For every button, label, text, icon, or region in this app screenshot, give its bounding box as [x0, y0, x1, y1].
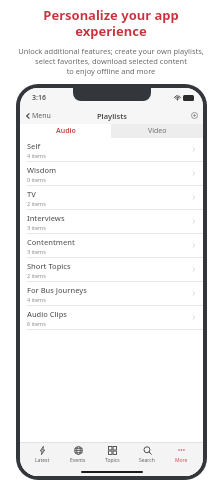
- button[interactable]: Self: [20, 138, 203, 162]
- staticText: Latest: [35, 457, 50, 464]
- staticText: For Bus Journeys: [27, 285, 87, 295]
- button[interactable]: Latest: [31, 445, 54, 465]
- staticText: 4 items: [27, 152, 46, 159]
- staticText: 0 items: [27, 176, 46, 183]
- staticText: 4 items: [27, 296, 46, 303]
- staticText: Short Topics: [27, 261, 71, 271]
- staticText: 6 items: [27, 320, 46, 327]
- button[interactable]: Menu: [20, 109, 57, 123]
- staticText: 2 items: [27, 200, 46, 207]
- button[interactable]: Interviews: [20, 210, 203, 234]
- staticText: Self: [27, 141, 41, 151]
- staticText: Contentment: [27, 237, 75, 247]
- button[interactable]: Video: [111, 124, 203, 138]
- staticText: Wisdom: [27, 165, 57, 175]
- button[interactable]: More: [171, 445, 192, 465]
- staticText: Unlock additional features; create your …: [6, 46, 216, 76]
- button[interactable]: Contentment: [20, 234, 203, 258]
- staticText: Events: [70, 457, 86, 464]
- staticText: Topics: [105, 457, 120, 464]
- button[interactable]: Audio Clips: [20, 306, 203, 330]
- staticText: 3 items: [27, 224, 46, 231]
- button[interactable]: Short Topics: [20, 258, 203, 282]
- button[interactable]: Wisdom: [20, 162, 203, 186]
- staticText: More: [175, 457, 188, 464]
- staticText: Video: [148, 126, 167, 136]
- staticText: Playlists: [97, 111, 127, 121]
- staticText: Search: [139, 457, 155, 464]
- button[interactable]: Events: [66, 445, 90, 465]
- button[interactable]: Add playlist: [186, 109, 203, 122]
- staticText: Audio: [56, 126, 76, 136]
- staticText: 2 items: [27, 272, 46, 279]
- button[interactable]: TV: [20, 186, 203, 210]
- button[interactable]: Topics: [101, 445, 124, 465]
- staticText: 3:16: [32, 93, 46, 103]
- staticText: Audio Clips: [27, 309, 67, 319]
- staticText: 3 items: [27, 248, 46, 255]
- button[interactable]: For Bus Journeys: [20, 282, 203, 306]
- button[interactable]: Search: [135, 445, 159, 465]
- staticText: Personalize your app experience: [10, 6, 212, 39]
- staticText: Menu: [32, 111, 51, 121]
- button[interactable]: Audio: [20, 124, 111, 138]
- staticText: Interviews: [27, 213, 65, 223]
- staticText: TV: [27, 189, 36, 199]
